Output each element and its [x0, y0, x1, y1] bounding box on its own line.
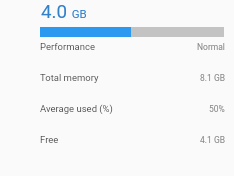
staticText: Normal — [197, 42, 225, 52]
staticText: Average used (%) — [40, 103, 113, 114]
staticText: 4.1 GB — [200, 135, 225, 145]
staticText: 8.1 GB — [200, 73, 225, 83]
staticText: 4.0 GB — [41, 1, 87, 23]
staticText: Performance — [40, 41, 95, 52]
button[interactable]: Average used (%) — [0, 93, 234, 124]
staticText: Total memory — [40, 72, 99, 83]
staticText: Free — [40, 134, 59, 145]
button[interactable]: Performance — [0, 31, 234, 62]
staticText: 50% — [209, 104, 225, 114]
button[interactable]: Free — [0, 124, 234, 155]
button[interactable]: Total memory — [0, 62, 234, 93]
